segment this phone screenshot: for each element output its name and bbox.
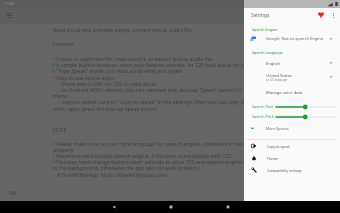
button[interactable]: Compatibility settings <box>244 166 340 177</box>
staticText: Read aloud text and web pages, convert t… <box>53 26 192 33</box>
staticText: • Easy to use across apps: <box>53 74 115 81</box>
staticText: in the background, otherwise the app wil… <box>53 164 201 171</box>
button[interactable] <box>244 123 340 134</box>
button[interactable]: Back <box>85 201 142 213</box>
button[interactable]: Menu <box>4 10 15 21</box>
button[interactable]: Theme <box>244 154 340 165</box>
button[interactable]: Copy-to-speak <box>244 142 340 153</box>
staticText: - on Android M(6)+ devices, you can sele… <box>53 86 276 93</box>
staticText: NOTE <box>53 126 67 133</box>
staticText: • Please make sure you set right languag… <box>53 140 267 147</box>
staticText: Settings <box>251 12 270 19</box>
button[interactable] <box>244 69 340 82</box>
staticText: Google Text-to-speech Engine <box>266 36 324 42</box>
staticText: Speech Engine <box>252 27 278 32</box>
staticText: • Recommended Google speech engine, it h… <box>53 152 232 159</box>
button[interactable] <box>244 56 340 67</box>
staticText: # DontKillMyApp https://dontkillmyapp.co… <box>53 171 168 178</box>
button[interactable]: Home <box>142 201 199 213</box>
staticText: Manage voice data <box>266 90 303 96</box>
button[interactable]: Favorite <box>315 9 327 21</box>
button[interactable] <box>244 34 340 45</box>
button[interactable]: Recents <box>199 201 256 213</box>
staticText: - Copy-to-speak: turn on "copy-to-speak"… <box>53 98 264 105</box>
staticText: menu <box>53 92 68 99</box>
staticText: More Options <box>266 126 289 131</box>
staticText: • A simple built-in browser: open your f… <box>53 61 252 68</box>
staticText: • You may need change battery saver sett… <box>53 158 263 165</box>
staticText: Theme <box>267 156 278 161</box>
staticText: - Share text or URL for T2S to read alou… <box>53 80 157 87</box>
staticText: United States <box>266 73 292 79</box>
staticText: properly <box>53 146 74 153</box>
staticText: English <box>266 61 280 67</box>
staticText: Speech Pitch <box>252 114 275 119</box>
staticText: Features <box>53 40 75 47</box>
staticText: Speech Language <box>252 50 283 55</box>
button[interactable]: More options <box>328 10 338 20</box>
staticText: 7:58 <box>5 1 14 7</box>
staticText: 164 <box>8 190 16 196</box>
staticText: Speech Rate <box>252 104 274 109</box>
button[interactable] <box>244 85 340 96</box>
staticText: Copy-to-speak <box>267 144 290 149</box>
staticText: en-US-language <box>266 78 288 82</box>
staticText: other apps, press the pop-up speak butto… <box>53 105 158 112</box>
staticText: • "Type Speak" mode: just read aloud wha… <box>53 67 182 74</box>
staticText: • Create or open text file, read aloud i… <box>53 55 214 62</box>
staticText: Compatibility settings <box>267 168 302 173</box>
